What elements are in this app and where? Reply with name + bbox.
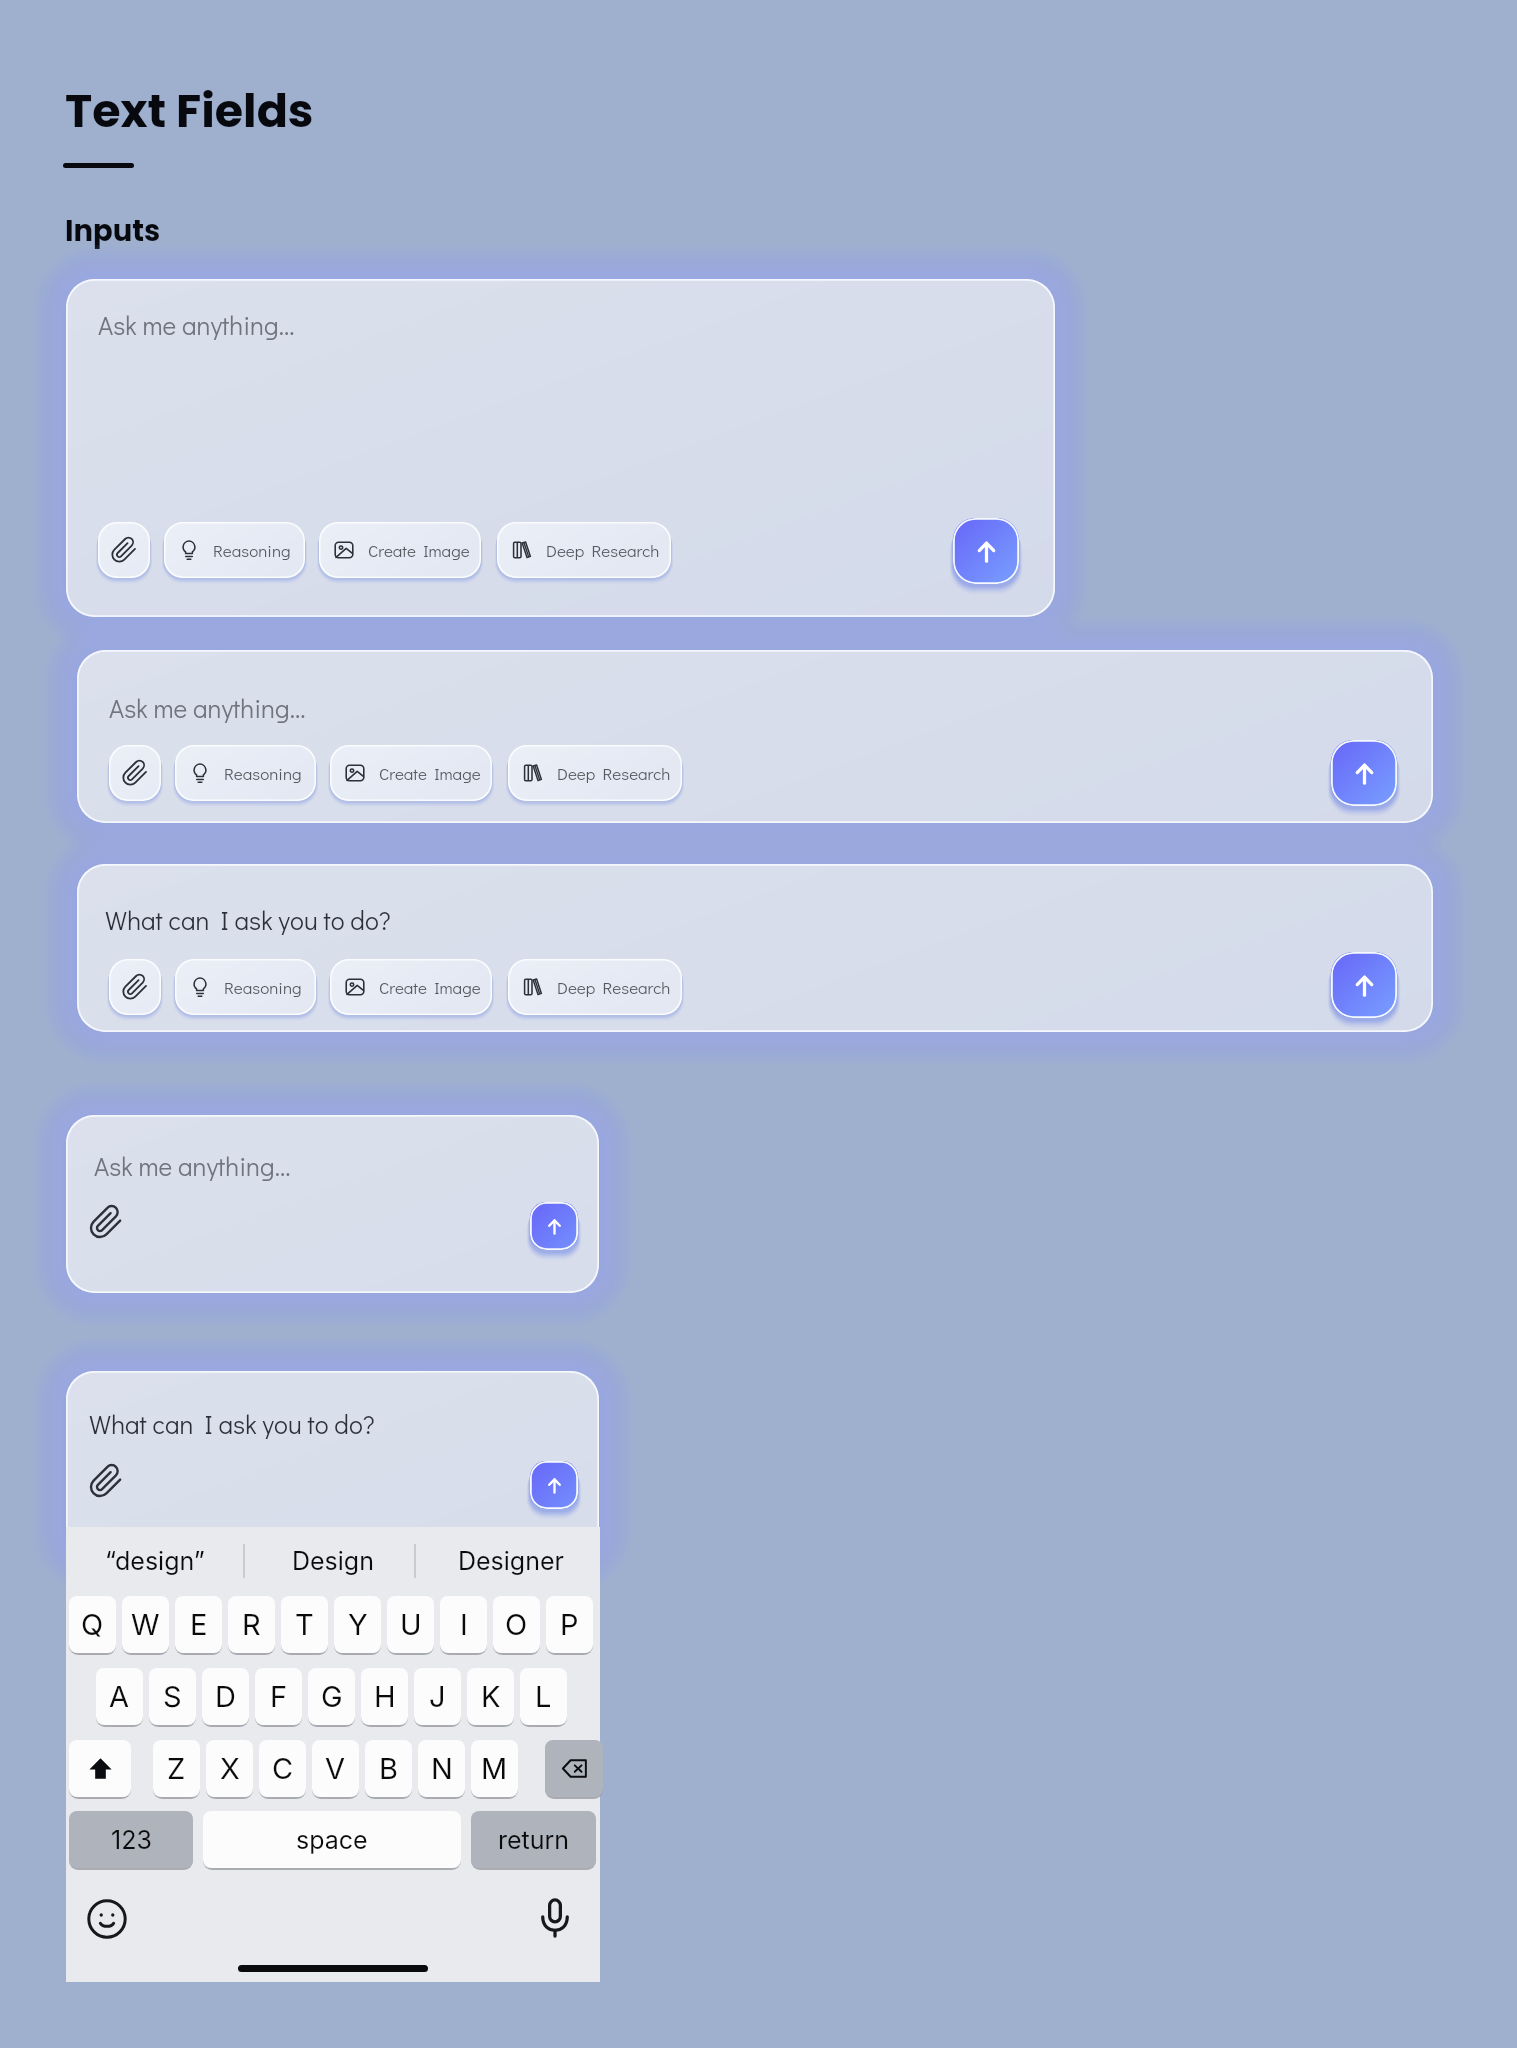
staticText: space xyxy=(296,1825,368,1855)
button[interactable]: W xyxy=(122,1596,169,1653)
button[interactable]: 123 xyxy=(69,1811,193,1868)
staticText: C xyxy=(272,1751,294,1786)
button[interactable]: “design” xyxy=(66,1527,244,1595)
button[interactable]: Emoji keyboard xyxy=(86,1898,128,1940)
staticText: What can I ask you to do? xyxy=(105,903,391,937)
button[interactable]: Designer xyxy=(422,1527,600,1595)
button[interactable]: J xyxy=(414,1668,461,1725)
button[interactable]: return xyxy=(471,1811,596,1868)
staticText: U xyxy=(400,1607,422,1642)
button[interactable]: H xyxy=(361,1668,408,1725)
button[interactable]: Deep Research xyxy=(508,959,682,1015)
staticText: N xyxy=(431,1751,453,1786)
staticText: Deep Research xyxy=(557,976,671,998)
button[interactable]: S xyxy=(149,1668,196,1725)
staticText: Text Fields xyxy=(65,79,314,143)
staticText: S xyxy=(163,1679,182,1714)
staticText: Y xyxy=(348,1607,368,1642)
button[interactable]: Create Image xyxy=(319,522,481,578)
staticText: Ask me anything... xyxy=(109,691,306,725)
staticText: T xyxy=(295,1607,314,1642)
staticText: V xyxy=(325,1751,346,1786)
staticText: Reasoning xyxy=(213,539,291,561)
button[interactable]: Send xyxy=(530,1202,578,1250)
button[interactable]: R xyxy=(228,1596,275,1653)
button[interactable]: Attach file xyxy=(84,1200,128,1244)
button[interactable]: Shift xyxy=(69,1740,131,1797)
staticText: Deep Research xyxy=(546,539,660,561)
button[interactable]: Reasoning xyxy=(164,522,305,578)
button[interactable]: E xyxy=(175,1596,222,1653)
button[interactable]: B xyxy=(365,1740,412,1797)
button[interactable]: Q xyxy=(69,1596,116,1653)
button[interactable]: X xyxy=(206,1740,253,1797)
staticText: L xyxy=(535,1679,552,1714)
button[interactable]: Backspace xyxy=(545,1740,603,1797)
button[interactable]: Deep Research xyxy=(508,745,682,801)
staticText: Reasoning xyxy=(224,976,302,998)
staticText: H xyxy=(374,1679,396,1714)
staticText: 123 xyxy=(111,1825,152,1855)
button[interactable]: A xyxy=(96,1668,143,1725)
staticText: F xyxy=(270,1679,288,1714)
staticText: return xyxy=(498,1825,570,1855)
button[interactable]: Y xyxy=(334,1596,381,1653)
button[interactable]: Attach file xyxy=(98,522,150,578)
staticText: W xyxy=(131,1607,160,1642)
button[interactable]: space xyxy=(203,1811,461,1868)
staticText: X xyxy=(220,1751,240,1786)
button[interactable]: G xyxy=(308,1668,355,1725)
button[interactable]: Attach file xyxy=(109,959,161,1015)
button[interactable]: M xyxy=(471,1740,518,1797)
button[interactable]: K xyxy=(467,1668,514,1725)
button[interactable]: Create Image xyxy=(330,959,492,1015)
staticText: Create Image xyxy=(368,539,470,561)
staticText: Designer xyxy=(458,1546,564,1576)
button[interactable]: U xyxy=(387,1596,434,1653)
staticText: M xyxy=(481,1751,508,1786)
button[interactable]: Reasoning xyxy=(175,959,316,1015)
button[interactable]: T xyxy=(281,1596,328,1653)
button[interactable]: Z xyxy=(153,1740,200,1797)
staticText: Ask me anything... xyxy=(98,308,295,342)
button[interactable]: Send xyxy=(1331,952,1397,1018)
staticText: Create Image xyxy=(379,976,481,998)
staticText: R xyxy=(242,1607,261,1642)
staticText: A xyxy=(109,1679,130,1714)
button[interactable]: Send xyxy=(530,1461,578,1509)
button[interactable]: V xyxy=(312,1740,359,1797)
button[interactable]: F xyxy=(255,1668,302,1725)
button[interactable]: O xyxy=(493,1596,540,1653)
button[interactable]: Create Image xyxy=(330,745,492,801)
button[interactable]: L xyxy=(520,1668,567,1725)
button[interactable]: Reasoning xyxy=(175,745,316,801)
button[interactable]: Attach file xyxy=(109,745,161,801)
button[interactable]: P xyxy=(546,1596,593,1653)
button[interactable]: N xyxy=(418,1740,465,1797)
staticText: Deep Research xyxy=(557,762,671,784)
staticText: D xyxy=(215,1679,236,1714)
staticText: B xyxy=(379,1751,398,1786)
button[interactable]: I xyxy=(440,1596,487,1653)
staticText: J xyxy=(429,1679,446,1714)
staticText: O xyxy=(505,1607,528,1642)
staticText: Reasoning xyxy=(224,762,302,784)
button[interactable]: C xyxy=(259,1740,306,1797)
button[interactable]: Send xyxy=(1331,740,1397,806)
button[interactable]: D xyxy=(202,1668,249,1725)
button[interactable]: Attach file xyxy=(84,1459,128,1503)
staticText: Design xyxy=(292,1546,374,1576)
staticText: Z xyxy=(167,1751,186,1786)
button[interactable]: Deep Research xyxy=(497,522,671,578)
staticText: Inputs xyxy=(65,211,161,252)
staticText: Create Image xyxy=(379,762,481,784)
staticText: K xyxy=(481,1679,501,1714)
staticText: P xyxy=(560,1607,579,1642)
button[interactable]: Dictation xyxy=(532,1895,578,1941)
staticText: Q xyxy=(81,1607,104,1642)
button[interactable]: Send xyxy=(953,518,1019,584)
button[interactable]: Design xyxy=(244,1527,422,1595)
staticText: “design” xyxy=(105,1546,205,1576)
staticText: G xyxy=(321,1679,343,1714)
staticText: I xyxy=(460,1607,468,1642)
